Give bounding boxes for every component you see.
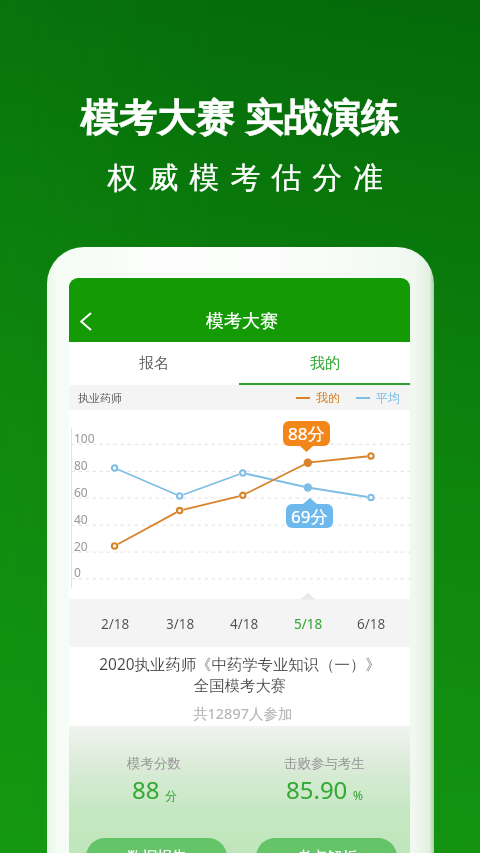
staticText: 平均 xyxy=(376,390,400,405)
staticText: 40 xyxy=(74,511,88,527)
staticText: 数据报告 xyxy=(127,848,187,853)
staticText: 我的 xyxy=(316,390,340,405)
staticText: 4/18 xyxy=(230,615,259,633)
staticText: 69分 xyxy=(291,505,328,528)
staticText: 模考分数 xyxy=(127,755,181,772)
button[interactable]: 6/18 xyxy=(353,599,389,647)
staticText: 我的 xyxy=(310,354,340,373)
button[interactable]: 报名 xyxy=(69,342,239,385)
button[interactable]: Back xyxy=(69,301,105,341)
staticText: 模考大赛 实战演练 xyxy=(80,90,400,142)
staticText: 85.90 xyxy=(286,773,348,806)
staticText: 0 xyxy=(74,564,81,580)
button[interactable]: 3/18 xyxy=(162,599,198,647)
staticText: 执业药师 xyxy=(78,391,122,405)
staticText: 报名 xyxy=(139,354,169,373)
staticText: 模考大赛 xyxy=(206,310,278,333)
staticText: 100 xyxy=(74,430,95,446)
staticText: 88分 xyxy=(288,422,325,445)
staticText: 60 xyxy=(74,484,88,500)
staticText: 权威模考估分准 xyxy=(102,159,389,197)
staticText: 击败参与考生 xyxy=(284,755,365,772)
staticText: 2020执业药师《中药学专业知识（一）》 全国模考大赛 xyxy=(99,654,381,696)
staticText: 3/18 xyxy=(166,615,195,633)
button[interactable]: 考点解析 xyxy=(256,838,397,853)
button[interactable]: 5/18 xyxy=(290,599,326,647)
staticText: 5/18 xyxy=(294,615,323,633)
staticText: 6/18 xyxy=(357,615,386,633)
staticText: % xyxy=(353,787,363,803)
staticText: 80 xyxy=(74,457,88,473)
staticText: 分 xyxy=(165,788,177,803)
button[interactable]: 4/18 xyxy=(226,599,262,647)
button[interactable]: 数据报告 xyxy=(86,838,227,853)
staticText: 88 xyxy=(132,773,160,806)
button[interactable]: 我的 xyxy=(239,342,410,385)
staticText: 2/18 xyxy=(101,615,130,633)
staticText: 考点解析 xyxy=(297,848,357,853)
button[interactable]: 2/18 xyxy=(97,599,133,647)
staticText: 20 xyxy=(74,538,88,554)
staticText: 共12897人参加 xyxy=(193,703,293,723)
